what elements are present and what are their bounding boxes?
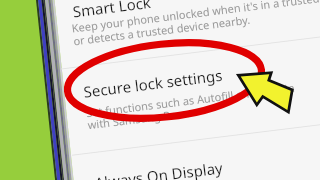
button[interactable]: Secure lock settings tutorial (0, 0, 320, 180)
